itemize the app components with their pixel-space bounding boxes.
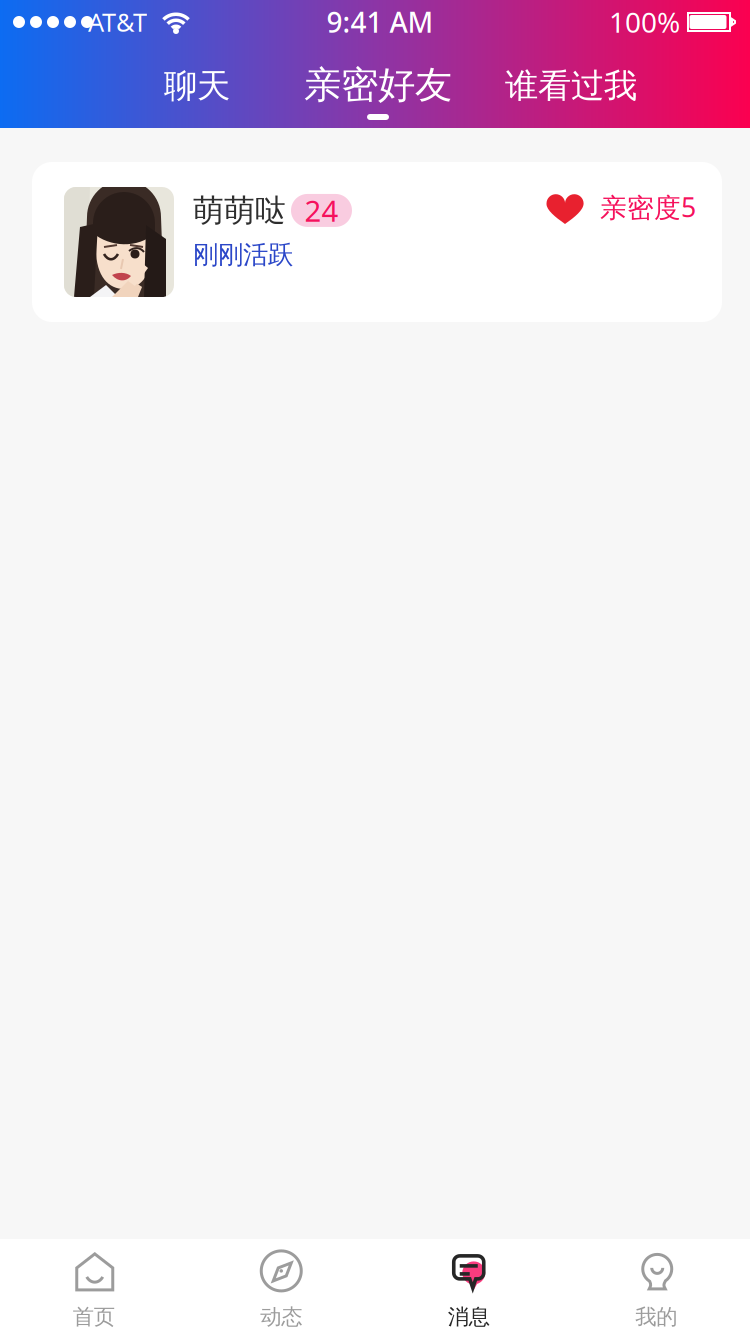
button[interactable]: 谁看过我 [461, 42, 681, 126]
button[interactable]: 消息 [375, 1239, 562, 1334]
button[interactable]: 萌萌哒 [32, 162, 722, 322]
button[interactable]: 动态 [187, 1239, 375, 1334]
staticText: 消息 [448, 1304, 490, 1330]
staticText: 动态 [260, 1304, 302, 1330]
staticText: 100% [609, 3, 680, 41]
button[interactable]: 首页 [0, 1239, 187, 1334]
staticText: 聊天 [164, 65, 230, 106]
staticText: 首页 [73, 1304, 115, 1330]
staticText: 亲密好友 [304, 62, 452, 108]
staticText: 萌萌哒 [193, 192, 286, 229]
staticText: AT&T [88, 5, 147, 39]
button[interactable]: 亲密好友 [268, 42, 488, 126]
staticText: 亲密度5 [600, 189, 696, 225]
staticText: 我的 [635, 1304, 677, 1330]
staticText: 刚刚活跃 [193, 239, 293, 270]
staticText: 谁看过我 [505, 65, 637, 106]
staticText: 9:41 AM [326, 3, 433, 41]
button[interactable]: 我的 [562, 1239, 750, 1334]
staticText: 24 [304, 191, 338, 230]
button[interactable]: 聊天 [97, 42, 297, 126]
